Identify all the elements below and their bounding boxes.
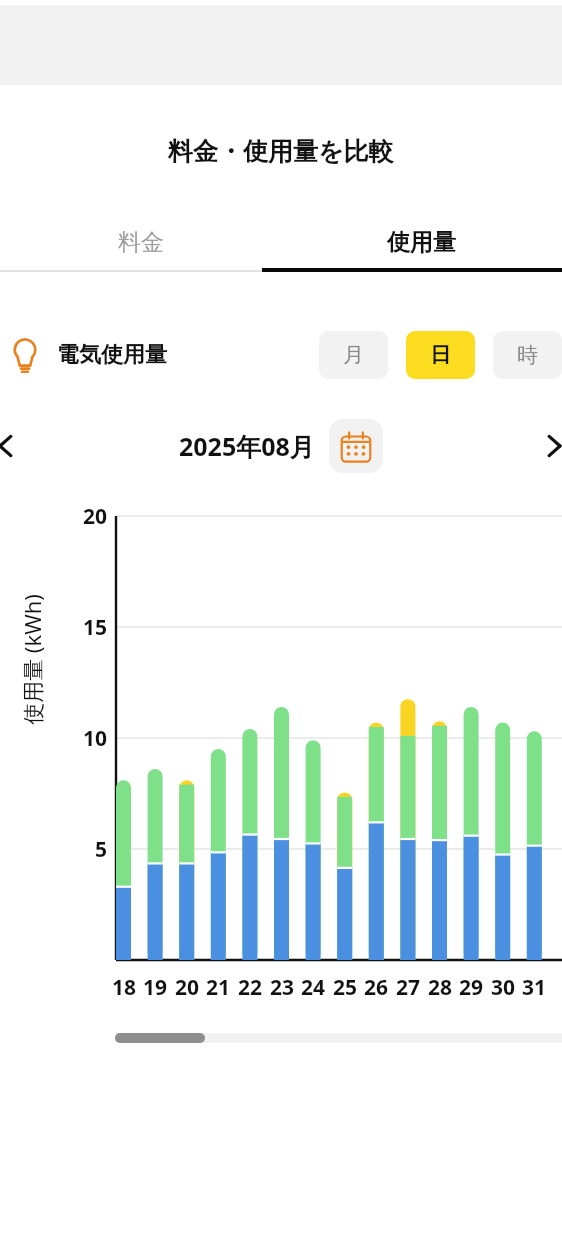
- staticText: 2025年08月: [179, 429, 315, 463]
- staticText: 時: [517, 342, 538, 368]
- staticText: 電気使用量: [57, 341, 167, 369]
- staticText: 使用量: [387, 228, 456, 257]
- staticText: 20: [83, 502, 108, 531]
- staticText: 24: [301, 973, 326, 1002]
- staticText: 5: [95, 835, 108, 864]
- staticText: 21: [206, 973, 231, 1002]
- staticText: 23: [270, 973, 295, 1002]
- button[interactable]: 使用量: [281, 212, 562, 272]
- button[interactable]: Previous month: [0, 424, 28, 468]
- staticText: 26: [364, 973, 389, 1002]
- staticText: 料金: [118, 228, 164, 257]
- button[interactable]: 料金: [0, 212, 281, 272]
- button[interactable]: 月: [319, 331, 388, 379]
- button[interactable]: Pick date: [329, 419, 383, 473]
- staticText: 15: [83, 613, 108, 642]
- staticText: 月: [343, 342, 364, 368]
- button[interactable]: 時: [493, 331, 562, 379]
- staticText: 使用量 (kWh): [17, 594, 47, 725]
- staticText: 25: [333, 973, 358, 1002]
- staticText: 19: [143, 973, 168, 1002]
- button[interactable]: 日: [406, 331, 475, 379]
- staticText: 10: [83, 724, 108, 753]
- staticText: 日: [430, 342, 451, 368]
- staticText: 料金・使用量を比較: [168, 136, 394, 167]
- staticText: 30: [491, 973, 516, 1002]
- button[interactable]: Next month: [532, 424, 562, 468]
- staticText: 18: [112, 973, 137, 1002]
- staticText: 31: [522, 973, 547, 1002]
- staticText: 22: [238, 973, 263, 1002]
- staticText: 20: [175, 973, 200, 1002]
- staticText: 28: [428, 973, 453, 1002]
- staticText: 27: [396, 973, 421, 1002]
- staticText: 29: [459, 973, 484, 1002]
